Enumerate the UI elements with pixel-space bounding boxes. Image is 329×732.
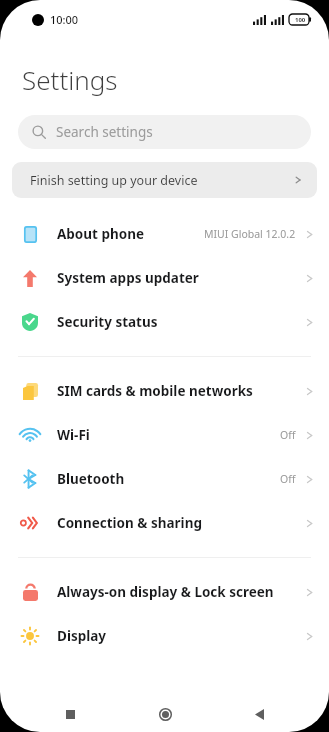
staticText: Display: [57, 627, 107, 645]
staticText: Always-on display & Lock screen: [57, 583, 274, 601]
button[interactable]: SIM cards & mobile networks: [0, 369, 329, 413]
button[interactable]: Back: [235, 696, 283, 732]
staticText: About phone: [57, 225, 145, 243]
button[interactable]: About phone: [0, 212, 329, 256]
staticText: Search settings: [56, 123, 153, 141]
button[interactable]: Bluetooth: [0, 457, 329, 501]
button[interactable]: Always-on display & Lock screen: [0, 570, 329, 614]
staticText: 100: [295, 16, 306, 24]
staticText: Off: [280, 428, 296, 442]
staticText: Finish setting up your device: [30, 172, 198, 189]
button[interactable]: Wi-Fi: [0, 413, 329, 457]
staticText: Off: [280, 472, 296, 486]
staticText: Wi-Fi: [57, 426, 90, 444]
staticText: MIUI Global 12.0.2: [204, 227, 296, 241]
staticText: System apps updater: [57, 269, 199, 287]
button[interactable]: Search settings: [18, 115, 311, 149]
staticText: Settings: [22, 62, 118, 97]
staticText: SIM cards & mobile networks: [57, 382, 253, 400]
button[interactable]: Connection & sharing: [0, 501, 329, 545]
button[interactable]: System apps updater: [0, 256, 329, 300]
staticText: 10:00: [50, 12, 79, 27]
button[interactable]: Display: [0, 614, 329, 658]
button[interactable]: Security status: [0, 300, 329, 344]
button[interactable]: Finish setting up your device: [12, 162, 317, 198]
staticText: Connection & sharing: [57, 514, 202, 532]
staticText: Bluetooth: [57, 470, 125, 488]
button[interactable]: Recents: [46, 696, 94, 732]
staticText: Security status: [57, 313, 158, 331]
button[interactable]: Home: [141, 696, 189, 732]
